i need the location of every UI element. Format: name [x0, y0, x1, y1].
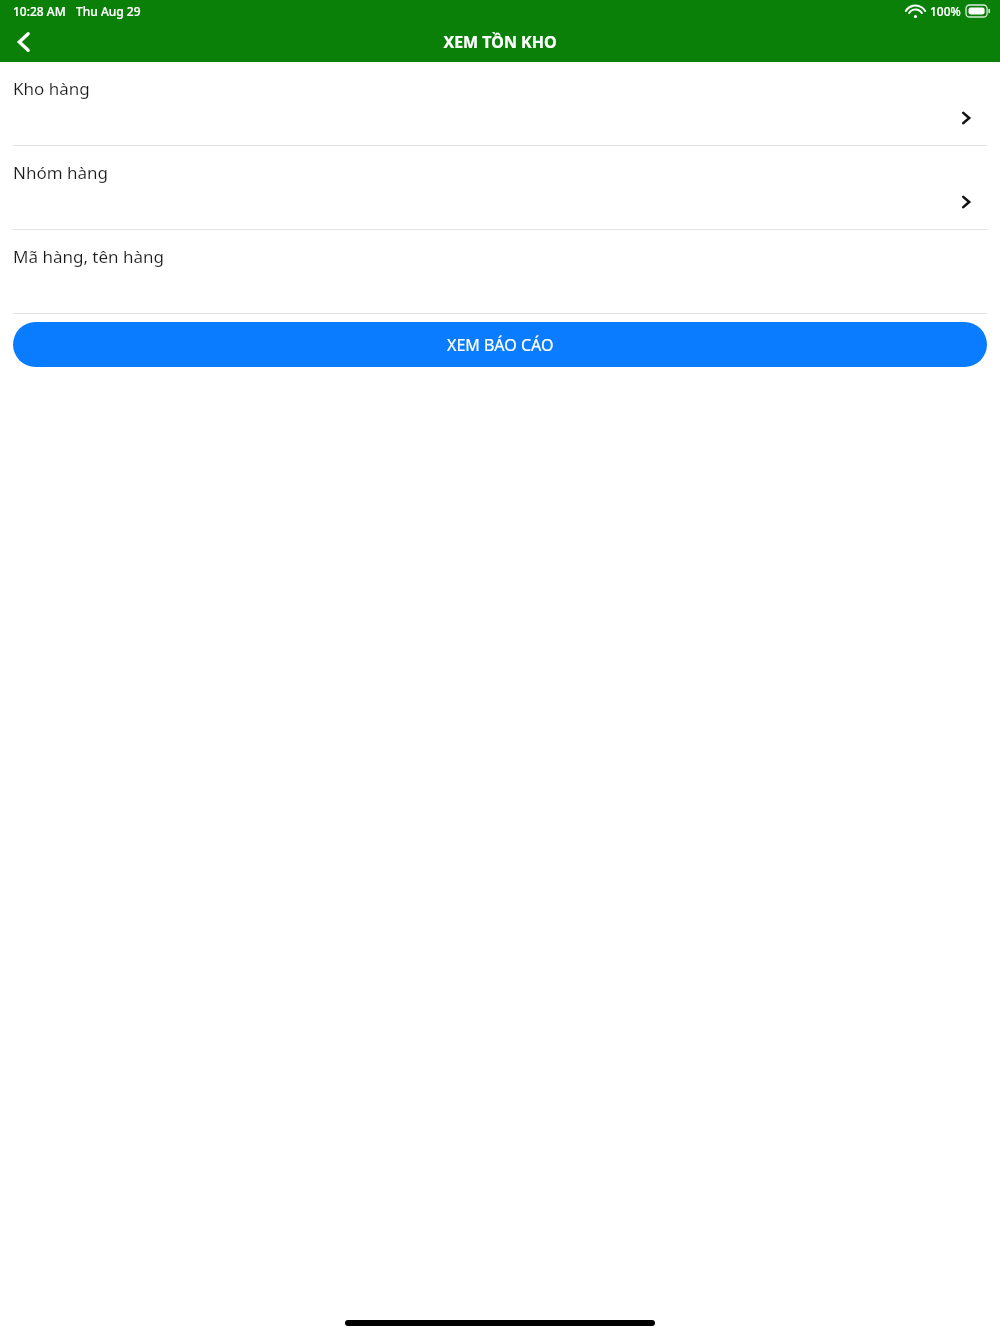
button[interactable]: Nhóm hàng	[0, 146, 1000, 229]
button[interactable]: XEM BÁO CÁO	[13, 322, 987, 367]
staticText: 100%	[930, 3, 961, 19]
staticText: Thu Aug 29	[76, 3, 141, 19]
button[interactable]: Kho hàng	[0, 62, 1000, 145]
staticText: 10:28 AM	[13, 3, 66, 19]
staticText: XEM TỒN KHO	[443, 31, 557, 53]
staticText: XEM BÁO CÁO	[447, 334, 554, 356]
staticText: Nhóm hàng	[13, 161, 109, 184]
staticText: Mã hàng, tên hàng	[13, 245, 165, 268]
button[interactable]: Mã hàng, tên hàng	[0, 230, 1000, 313]
staticText: Kho hàng	[13, 77, 90, 100]
button[interactable]: Back	[0, 22, 48, 62]
